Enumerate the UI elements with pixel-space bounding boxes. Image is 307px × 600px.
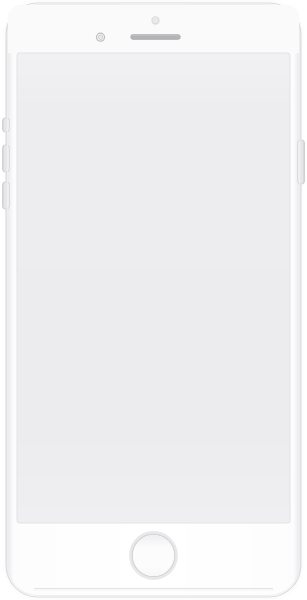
button[interactable]: Volume down [0, 182, 10, 209]
button[interactable]: Power [297, 140, 307, 184]
button[interactable]: Ring silent switch [0, 118, 10, 132]
button[interactable]: Volume up [0, 145, 10, 172]
button[interactable]: Home button [131, 533, 176, 578]
